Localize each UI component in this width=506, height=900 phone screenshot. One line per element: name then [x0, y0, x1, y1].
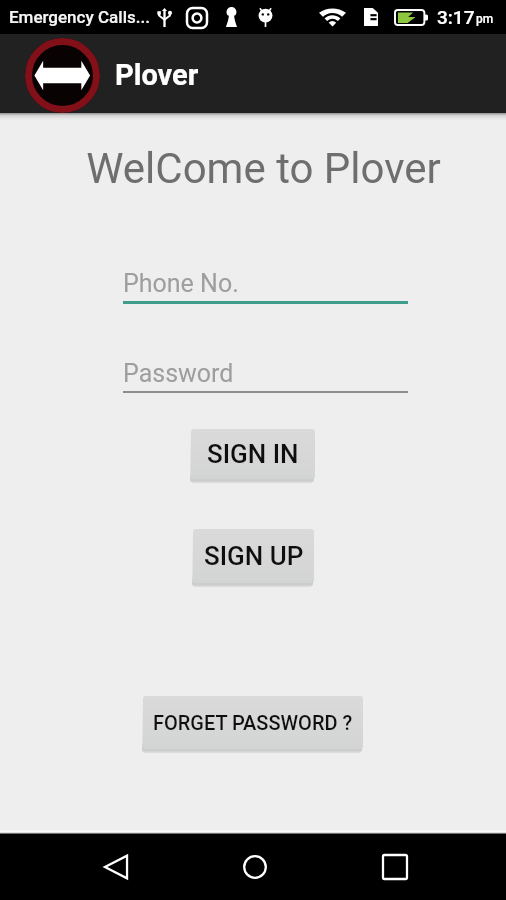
button[interactable]: Back — [0, 834, 168, 900]
staticText: 3:17 — [437, 6, 475, 28]
button[interactable]: SIGN UP — [193, 529, 314, 583]
staticText: SIGN IN — [207, 439, 299, 469]
button[interactable]: FORGET PASSWORD ? — [143, 696, 363, 749]
staticText: pm — [476, 12, 494, 26]
staticText: Plover — [115, 58, 199, 92]
button[interactable]: Home — [168, 834, 336, 900]
button[interactable]: Phone No. — [123, 269, 408, 304]
staticText: Emergency Calls... — [9, 7, 151, 27]
button[interactable]: SIGN IN — [191, 429, 315, 479]
staticText: FORGET PASSWORD ? — [153, 711, 353, 734]
button[interactable]: Recents — [336, 834, 504, 900]
staticText: Phone No. — [123, 269, 239, 298]
staticText: SIGN UP — [204, 541, 304, 571]
button[interactable]: Plover logo — [25, 38, 100, 113]
button[interactable]: Password — [123, 359, 408, 393]
staticText: Password — [123, 359, 234, 388]
staticText: WelCome to Plover — [21, 144, 506, 193]
